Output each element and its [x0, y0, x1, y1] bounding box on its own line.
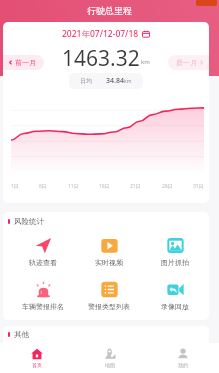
staticText: 我的 — [178, 362, 188, 368]
button[interactable]: 图片抓拍 — [142, 230, 208, 274]
button[interactable]: Badge — [196, 0, 217, 6]
staticText: 行驶总里程 — [87, 5, 132, 16]
staticText: 6日 — [39, 183, 47, 190]
staticText: 录像回放 — [161, 302, 189, 311]
button[interactable]: 首页 — [0, 343, 73, 373]
staticText: 26日 — [162, 183, 173, 190]
staticText: 2021年07/12-07/18 — [62, 28, 139, 40]
staticText: 其他 — [14, 330, 29, 339]
button[interactable]: 2021年07/12-07/18 — [3, 28, 209, 40]
staticText: 31日 — [193, 183, 204, 190]
staticText: km — [141, 58, 150, 66]
button[interactable]: 录像回放 — [142, 274, 208, 318]
staticText: 风险统计 — [14, 217, 44, 226]
staticText: 后一月 — [176, 58, 197, 67]
staticText: 11日 — [68, 183, 79, 190]
button[interactable]: 实时视频 — [76, 230, 142, 274]
staticText: 日均 — [80, 77, 92, 85]
button[interactable]: 警报类型列表 — [76, 274, 142, 318]
staticText: 图片抓拍 — [161, 258, 189, 267]
staticText: 警报类型列表 — [88, 302, 130, 311]
button[interactable]: 前一月 — [3, 55, 44, 70]
staticText: 16日 — [99, 183, 110, 190]
staticText: 实时视频 — [95, 258, 123, 267]
button[interactable]: 后一月 — [168, 55, 209, 70]
staticText: 前一月 — [15, 58, 36, 67]
staticText: 轨迹查看 — [29, 258, 57, 267]
staticText: 地图 — [105, 362, 115, 368]
button[interactable]: 轨迹查看 — [10, 230, 76, 274]
button[interactable]: 我的 — [146, 343, 219, 373]
staticText: 21日 — [130, 183, 141, 190]
staticText: km — [124, 78, 132, 85]
staticText: 1463.32 — [62, 44, 140, 68]
staticText: 首页 — [32, 362, 42, 368]
staticText: 车辆警报排名 — [22, 302, 64, 311]
button[interactable]: 地图 — [73, 343, 146, 373]
staticText: 1日 — [11, 183, 19, 190]
button[interactable]: 车辆警报排名 — [10, 274, 76, 318]
staticText: 34.84 — [106, 76, 124, 86]
